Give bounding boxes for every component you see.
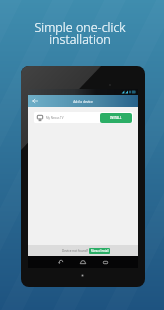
other: Back bbox=[32, 98, 38, 104]
staticText: Device not found? bbox=[62, 249, 89, 253]
button[interactable]: INSTALL bbox=[100, 113, 132, 123]
staticText: Manual install bbox=[91, 249, 109, 253]
button[interactable]: Recent apps bbox=[100, 256, 110, 268]
button[interactable]: Home bbox=[78, 256, 88, 268]
staticText: My Nexus TV bbox=[46, 116, 64, 120]
staticText: Add a device bbox=[28, 99, 138, 103]
button[interactable]: Manual install bbox=[89, 248, 110, 254]
button[interactable]: Back bbox=[28, 95, 138, 107]
staticText: Simple one-click installation bbox=[0, 19, 162, 48]
button[interactable]: My Nexus TV bbox=[34, 112, 133, 123]
button[interactable]: Back bbox=[55, 256, 65, 268]
staticText: INSTALL bbox=[110, 116, 122, 120]
